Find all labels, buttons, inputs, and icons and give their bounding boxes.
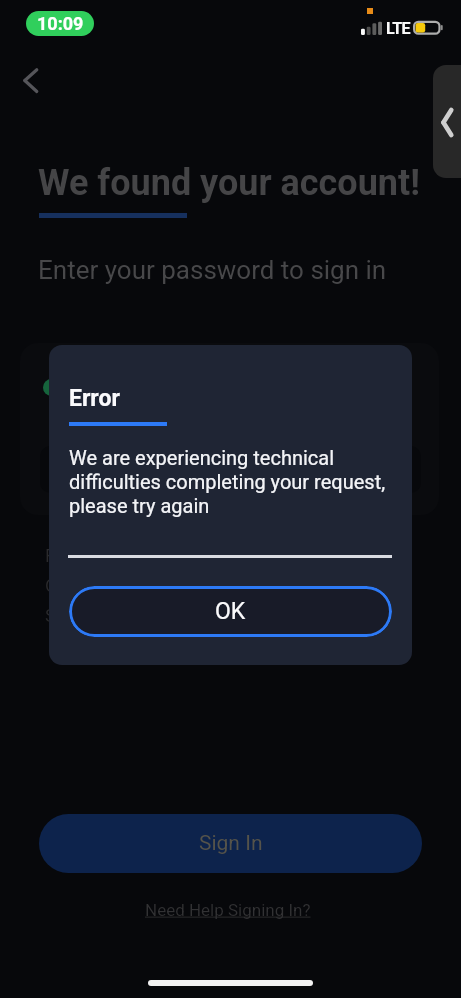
staticText: Error <box>69 385 120 412</box>
button[interactable]: OK <box>69 586 392 637</box>
staticText: One-time passcode <box>45 575 200 596</box>
button[interactable]: Sign In <box>39 814 422 873</box>
staticText: Remember me <box>45 545 163 566</box>
staticText: OK <box>215 598 246 625</box>
button[interactable]: Back <box>9 59 53 103</box>
button[interactable]: Open edge panel <box>433 65 461 178</box>
staticText: LTE <box>386 19 410 38</box>
staticText: Security questions <box>45 605 193 626</box>
staticText: michael.account <box>70 377 203 398</box>
button[interactable]: Need Help Signing In? <box>145 900 311 920</box>
staticText: Sign In <box>199 831 263 856</box>
staticText: We found your account! <box>38 162 420 204</box>
staticText: 10:09 <box>37 13 84 34</box>
staticText: Need Help Signing In? <box>145 900 311 920</box>
staticText: We are experiencing technical difficulti… <box>69 446 394 518</box>
staticText: Enter your password to sign in <box>38 255 387 285</box>
